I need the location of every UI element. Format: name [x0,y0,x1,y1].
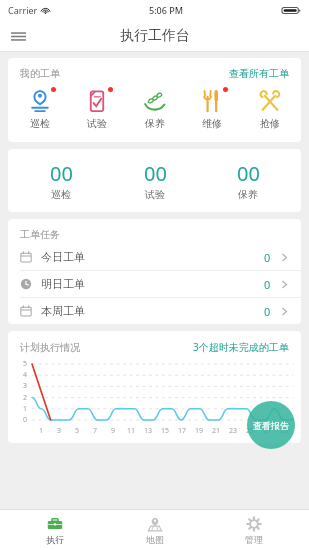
staticText: 11 [127,426,136,436]
button[interactable]: 本周工单 [8,298,301,324]
staticText: 维修 [202,117,222,130]
staticText: 巡检 [30,117,50,130]
staticText: 4 [23,370,28,380]
button[interactable]: 保养 [129,88,181,130]
staticText: 我的工单 [20,67,60,80]
staticText: 15 [161,426,170,436]
button[interactable]: 执行 [10,510,100,550]
staticText: 保养 [238,188,258,201]
staticText: 21 [212,426,221,436]
staticText: 9 [111,426,116,436]
staticText: 本周工单 [41,304,85,318]
staticText: 执行 [46,534,64,545]
button[interactable]: Menu [3,21,33,51]
staticText: 2 [23,393,28,403]
staticText: 5:06 PM [149,4,183,16]
button[interactable]: 明日工单 [8,271,301,297]
staticText: 0 [264,277,271,292]
staticText: 19 [195,426,204,436]
button[interactable]: 管理 [209,510,299,550]
button[interactable]: 维修 [186,88,238,130]
staticText: 00 [237,160,260,187]
button[interactable]: 查看报告 [247,401,295,449]
staticText: 13 [144,426,153,436]
staticText: 地图 [146,534,164,545]
staticText: 巡检 [51,188,71,201]
staticText: 3个超时未完成的工单 [193,340,289,354]
staticText: 1 [39,426,44,436]
staticText: 明日工单 [41,277,85,291]
staticText: 执行工作台 [120,27,190,45]
button[interactable]: 巡检 [14,88,66,130]
button[interactable]: 3个超时未完成的工单 [193,340,289,354]
staticText: 查看所有工单 [229,67,289,80]
staticText: 5 [75,426,80,436]
button[interactable]: 查看所有工单 [229,67,289,80]
staticText: 查看报告 [253,420,289,431]
staticText: 工单任务 [20,228,60,241]
staticText: 00 [50,160,73,187]
staticText: 29 [280,426,289,436]
staticText: 27 [263,426,272,436]
staticText: 0 [264,250,271,265]
staticText: 25 [246,426,255,436]
staticText: 17 [178,426,187,436]
staticText: 试验 [145,188,165,201]
button[interactable]: 试验 [71,88,123,130]
staticText: 3 [57,426,62,436]
button[interactable]: 00 [21,160,101,201]
staticText: 7 [93,426,98,436]
staticText: 0 [264,304,271,319]
staticText: 3 [23,381,28,391]
staticText: Carrier [8,4,38,16]
staticText: 今日工单 [41,250,85,264]
staticText: 23 [229,426,238,436]
button[interactable]: 地图 [110,510,200,550]
staticText: 抢修 [260,117,280,130]
button[interactable]: 00 [115,160,195,201]
button[interactable]: 00 [208,160,288,201]
staticText: 00 [144,160,167,187]
staticText: 0 [23,415,28,425]
staticText: 试验 [87,117,107,130]
staticText: 保养 [145,117,165,130]
button[interactable]: 今日工单 [8,244,301,270]
staticText: 1 [23,404,28,414]
staticText: 计划执行情况 [20,341,80,354]
staticText: 5 [23,359,28,369]
staticText: 管理 [245,534,263,545]
button[interactable]: 抢修 [244,88,296,130]
